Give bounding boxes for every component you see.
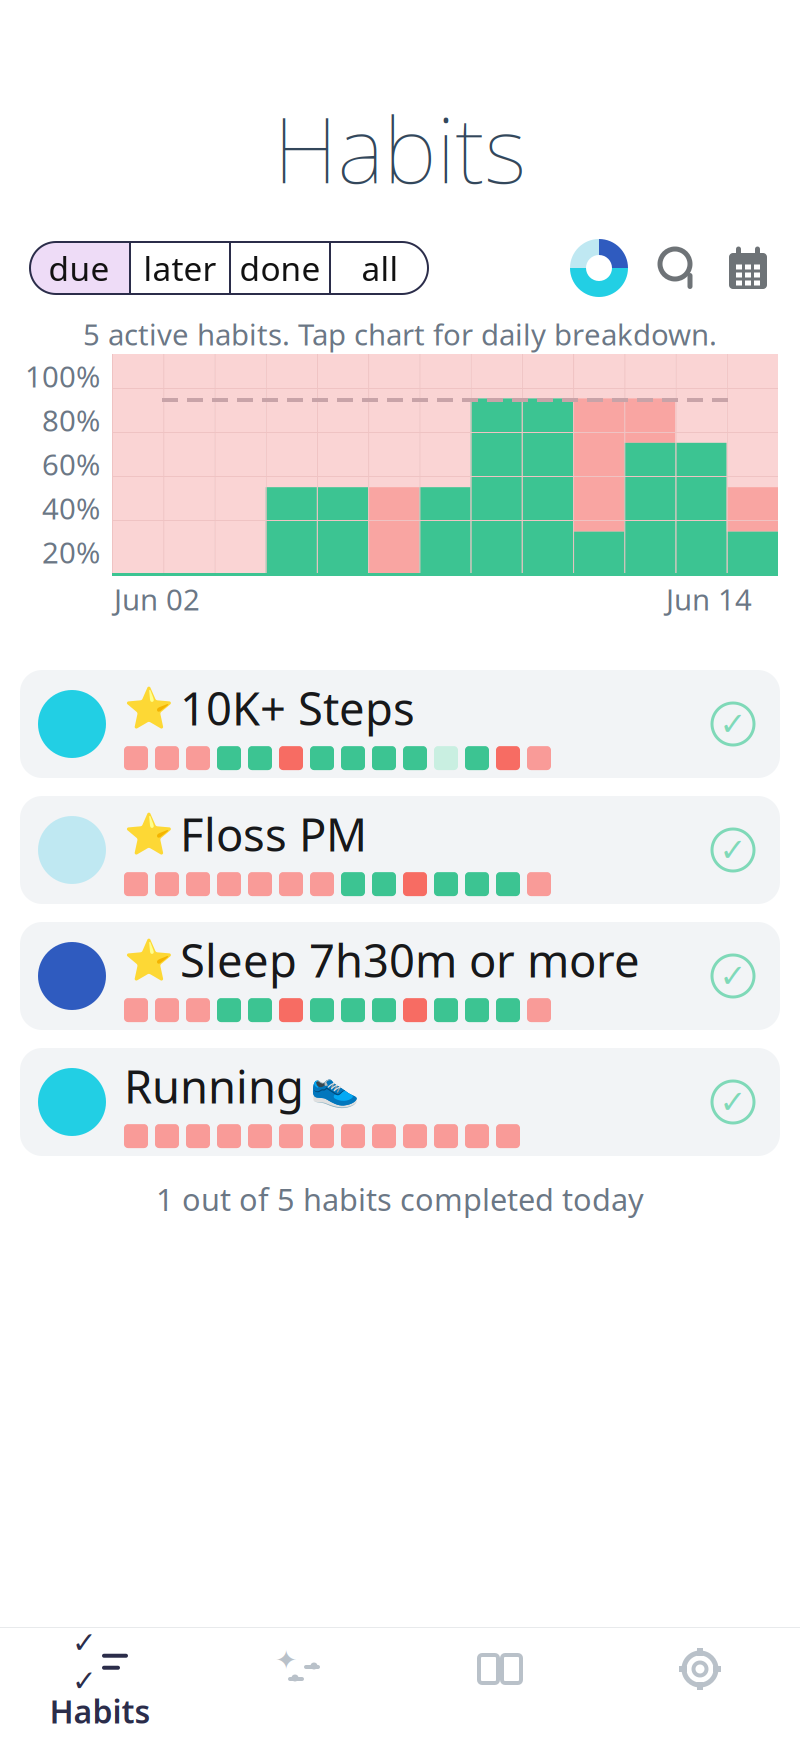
staticText: done [239,246,320,290]
button[interactable]: Calendar [722,240,774,296]
button[interactable]: ✓ [0,1628,200,1744]
button[interactable]: ⭐️ [20,796,780,904]
staticText: 60% [42,444,100,483]
button[interactable]: Progress overview [570,239,628,297]
button[interactable]: Search [652,242,704,294]
button[interactable]: Habit completion chart [112,354,778,576]
button[interactable]: Settings [600,1628,800,1744]
button[interactable]: Journal [400,1628,600,1744]
staticText: 100% [25,356,100,395]
staticText: ✓ [719,832,746,868]
staticText: due [48,246,109,290]
staticText: ✓ [719,706,746,742]
button[interactable]: Running [20,1048,780,1156]
button[interactable]: done [231,242,329,294]
staticText: later [143,246,216,290]
staticText: 👟 [310,1063,360,1109]
staticText: Floss PM [180,804,367,864]
staticText: all [361,246,398,290]
staticText: ✓ [719,958,746,994]
button[interactable]: all [331,242,429,294]
button[interactable]: Insights [200,1628,400,1744]
staticText: 80% [42,400,100,439]
staticText: Jun 14 [666,579,752,618]
staticText: 40% [42,488,100,527]
staticText: 5 active habits. Tap chart for daily bre… [83,314,717,353]
staticText: ⭐️ [124,937,174,983]
staticText: Sleep 7h30m or more [180,930,640,990]
button[interactable]: later [131,242,229,294]
button[interactable]: ⭐️ [20,922,780,1030]
staticText: Running [124,1056,304,1116]
staticText: 20% [42,532,100,571]
staticText: 10K+ Steps [180,678,415,738]
staticText: ✓ [719,1084,746,1120]
staticText: ⭐️ [124,685,174,731]
staticText: Habits [273,88,526,208]
staticText: 1 out of 5 habits completed today [156,1179,644,1219]
staticText: ⭐️ [124,811,174,857]
button[interactable]: due [29,242,129,294]
button[interactable]: ⭐️ [20,670,780,778]
staticText: Habits [49,1690,150,1732]
staticText: ✓ [72,1626,97,1659]
staticText: ✦ [275,1645,297,1675]
staticText: ✓ [72,1664,97,1698]
staticText: Jun 02 [114,579,200,618]
